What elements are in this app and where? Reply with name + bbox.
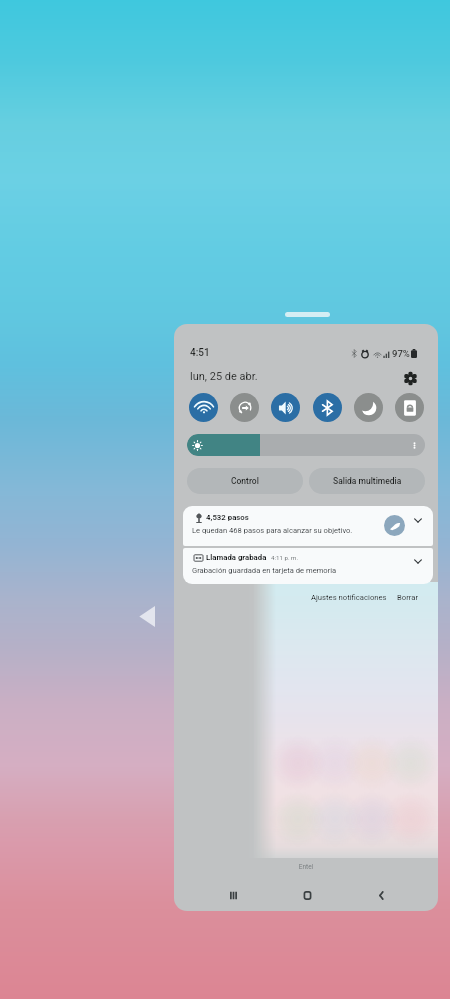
staticText: 4:11 p. m. <box>271 554 299 561</box>
button[interactable]: Recents <box>214 885 252 905</box>
staticText: Llamada grabada <box>206 553 267 562</box>
button[interactable]: 4,532 pasos <box>183 506 433 546</box>
staticText: Salida multimedia <box>333 476 402 486</box>
button[interactable]: Ajustes notificaciones <box>307 588 391 607</box>
button[interactable]: Do not disturb <box>354 393 383 422</box>
button[interactable]: Control <box>187 468 303 494</box>
button[interactable]: Llamada grabada <box>183 548 433 584</box>
button[interactable]: Bluetooth <box>313 393 342 422</box>
staticText: Grabación guardada en tarjeta de memoria <box>192 566 337 575</box>
staticText: Entel <box>174 863 438 871</box>
button[interactable]: Home <box>288 885 326 905</box>
button[interactable]: Settings <box>398 366 422 390</box>
staticText: Control <box>231 476 259 486</box>
staticText: lun, 25 de abr. <box>190 370 258 383</box>
button[interactable]: Volume <box>271 393 300 422</box>
staticText: Borrar <box>397 593 419 602</box>
button[interactable]: Sync <box>230 393 259 422</box>
staticText: Ajustes notificaciones <box>311 593 387 602</box>
staticText: 4,532 pasos <box>206 513 249 522</box>
button[interactable]: Secure folder <box>395 393 424 422</box>
staticText: 4:51 <box>190 347 210 359</box>
button[interactable]: Salida multimedia <box>309 468 425 494</box>
staticText: 97% <box>392 348 410 359</box>
staticText: Le quedan 468 pasos para alcanzar su obj… <box>192 526 353 535</box>
button[interactable]: Back <box>362 885 400 905</box>
button[interactable]: Borrar <box>393 588 423 607</box>
button[interactable]: Wi-Fi <box>189 393 218 422</box>
button[interactable]: Brightness <box>187 434 425 456</box>
